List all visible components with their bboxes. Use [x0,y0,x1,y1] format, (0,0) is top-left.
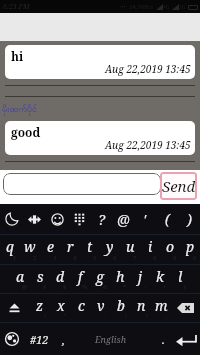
button[interactable]: ? [90,204,112,234]
staticText: , [62,332,65,347]
button[interactable]: v [91,294,111,322]
staticText: hi [11,48,24,64]
button[interactable]: z [29,294,50,322]
button[interactable]: Shift [0,294,29,322]
button[interactable]: a [10,265,30,293]
button[interactable]: y [100,235,120,264]
staticText: a [16,267,25,286]
staticText: #12 [30,332,49,347]
staticText: n [137,296,146,315]
button[interactable]: Resize keyboard [23,204,46,234]
staticText: s [37,267,44,286]
staticText: 7 [133,254,137,262]
button[interactable]: m [151,294,171,322]
staticText: p [186,237,195,256]
staticText: good [11,124,41,140]
staticText: Aug 22,2019 13:45 [105,62,191,76]
staticText: o [166,237,175,256]
button[interactable]: Change language [0,323,24,355]
button[interactable]: Number pad [68,204,90,234]
staticText: c [78,296,85,315]
staticText: 1 [13,254,17,262]
button[interactable]: q [0,235,20,264]
button[interactable]: ' [134,204,156,234]
staticText: . [162,332,165,347]
staticText: 9 [173,254,177,262]
staticText: 5 [93,254,97,262]
button[interactable]: s [30,265,50,293]
staticText: z [36,296,44,315]
staticText: x [57,296,65,315]
staticText: d [56,267,65,286]
staticText: 4 [73,254,77,262]
button[interactable]: o [160,235,180,264]
button[interactable]: k [150,265,170,293]
staticText: + [163,283,167,291]
button[interactable]: t [80,235,100,264]
button[interactable]: g [90,265,110,293]
button[interactable]: p [180,235,200,264]
staticText: ? [98,210,105,229]
button[interactable]: w [20,235,40,264]
staticText: English [95,333,127,345]
button[interactable]: Enter [172,323,200,355]
staticText: 2 [33,254,37,262]
staticText: t [87,237,93,256]
button[interactable]: hi [5,45,195,79]
button[interactable]: u [120,235,140,264]
staticText: $ [63,283,67,291]
staticText: h [116,267,125,286]
button[interactable]: h [110,265,130,293]
staticText: 6 [113,254,117,262]
staticText: e [47,237,54,256]
button[interactable]: Emoji [46,204,68,234]
staticText: 8 [153,254,157,262]
button[interactable]: ( [156,204,178,234]
staticText: l [178,267,183,286]
button[interactable]: j [130,265,150,293]
staticText: q [6,237,14,256]
button[interactable]: r [60,235,80,264]
staticText: k [156,267,164,286]
button[interactable]: . [155,323,172,355]
staticText: # [43,283,47,291]
staticText: / [125,312,127,320]
staticText: 3G [179,4,186,11]
button[interactable]: , [55,323,72,355]
staticText: & [103,283,108,291]
button[interactable]: ) [178,204,200,234]
button[interactable]: Night mode [0,204,23,234]
staticText: y [106,237,114,256]
button[interactable]: @ [112,204,134,234]
button[interactable]: x [50,294,71,322]
button[interactable]: d [50,265,70,293]
staticText: v [97,296,105,315]
button[interactable]: l [170,265,190,293]
button[interactable]: f [70,265,90,293]
staticText: ) [187,210,192,229]
staticText: j [138,267,143,286]
staticText: @ [22,283,28,291]
button[interactable]: e [40,235,60,264]
staticText: ••• 24.78B/s [119,3,154,11]
staticText: ' [143,210,147,229]
staticText: " [64,312,67,320]
button[interactable]: i [140,235,160,264]
button[interactable]: c [71,294,91,322]
staticText: g [96,267,104,286]
button[interactable]: b [111,294,131,322]
button[interactable]: n [131,294,151,322]
staticText: w [24,237,36,256]
button[interactable] [3,173,161,195]
button[interactable]: Backspace [171,294,200,322]
button[interactable]: good [5,121,195,155]
staticText: r [67,237,74,256]
button[interactable]: #12 [24,323,55,355]
button[interactable]: Send [160,172,197,200]
button[interactable]: Space [72,323,155,355]
